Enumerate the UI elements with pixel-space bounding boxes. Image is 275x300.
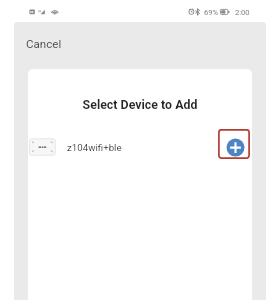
staticText: 2:00 <box>235 8 250 17</box>
staticText: z104wifi+ble <box>67 142 122 153</box>
staticText: Select Device to Add <box>28 97 252 112</box>
button[interactable]: Cancel <box>14 22 62 69</box>
staticText: 69% <box>204 8 219 17</box>
button[interactable]: z104wifi+ble <box>28 130 252 164</box>
button[interactable]: Add device <box>218 129 250 159</box>
staticText: Cancel <box>26 37 62 51</box>
